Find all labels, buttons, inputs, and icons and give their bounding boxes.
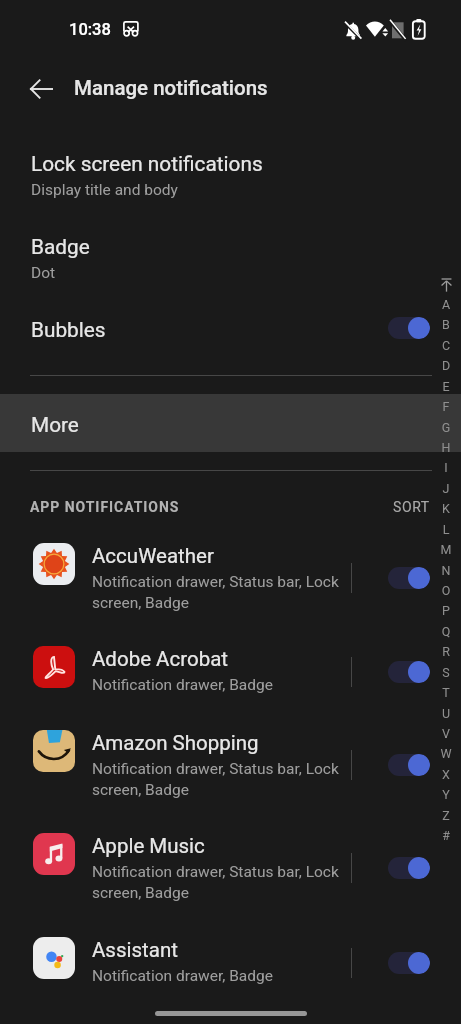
staticText: P — [432, 603, 460, 618]
staticText: D — [432, 358, 460, 373]
button[interactable]: Badge — [0, 233, 461, 316]
staticText: Assistant — [92, 938, 178, 962]
staticText: Badge — [31, 235, 90, 259]
button[interactable]: Assistant — [0, 921, 461, 1005]
staticText: Dot — [31, 264, 56, 282]
staticText: Lock screen notifications — [31, 152, 263, 176]
staticText: # — [432, 828, 460, 843]
staticText: Notification drawer, Badge — [92, 676, 273, 694]
staticText: V — [432, 726, 460, 741]
staticText: 10:38 — [69, 20, 111, 39]
staticText: Bubbles — [31, 318, 106, 342]
staticText: S — [432, 665, 460, 680]
button[interactable]: Assistant notifications toggle, on — [388, 952, 430, 974]
button[interactable]: Apple Music — [0, 817, 461, 920]
staticText: W — [432, 746, 460, 761]
staticText: G — [432, 420, 460, 435]
button[interactable]: Amazon Shopping — [0, 714, 461, 817]
staticText: Notification drawer, Badge — [92, 967, 273, 985]
staticText: L — [432, 522, 460, 537]
staticText: Z — [432, 808, 460, 823]
staticText: Manage notifications — [74, 76, 268, 100]
staticText: Apple Music — [92, 834, 205, 858]
staticText: Notification drawer, Status bar, Lock sc… — [92, 573, 339, 612]
staticText: A — [432, 297, 460, 312]
staticText: C — [432, 338, 460, 353]
staticText: E — [432, 379, 460, 394]
staticText: X — [432, 767, 460, 782]
button[interactable]: SORT — [385, 494, 440, 520]
button[interactable]: Scroll index — [432, 270, 460, 850]
button[interactable]: AccuWeather — [0, 527, 461, 630]
staticText: I — [432, 460, 460, 475]
button[interactable]: Apple Music notifications toggle, on — [388, 857, 430, 879]
staticText: F — [432, 399, 460, 414]
staticText: Notification drawer, Status bar, Lock sc… — [92, 863, 339, 902]
staticText: Q — [432, 624, 460, 639]
button[interactable]: Amazon Shopping notifications toggle, on — [388, 754, 430, 776]
button[interactable]: Bubbles toggle, on — [388, 317, 430, 339]
button[interactable]: Adobe Acrobat notifications toggle, on — [388, 661, 430, 683]
button[interactable]: More — [0, 394, 461, 452]
staticText: SORT — [393, 499, 430, 515]
staticText: Notification drawer, Status bar, Lock sc… — [92, 760, 339, 799]
staticText: M — [432, 542, 460, 557]
staticText: Adobe Acrobat — [92, 647, 229, 671]
staticText: O — [432, 583, 460, 598]
staticText: J — [432, 481, 460, 496]
staticText: K — [432, 501, 460, 516]
button[interactable]: AccuWeather notifications toggle, on — [388, 567, 430, 589]
staticText: U — [432, 706, 460, 721]
button[interactable]: Back — [18, 66, 64, 112]
staticText: APP NOTIFICATIONS — [30, 499, 180, 515]
staticText: H — [432, 440, 460, 455]
staticText: R — [432, 644, 460, 659]
staticText: Y — [432, 787, 460, 802]
staticText: B — [432, 317, 460, 332]
button[interactable]: Bubbles — [0, 300, 461, 368]
staticText: N — [432, 563, 460, 578]
staticText: Display title and body — [31, 181, 178, 199]
staticText: Amazon Shopping — [92, 731, 259, 755]
button[interactable]: Lock screen notifications — [0, 150, 461, 233]
staticText: More — [31, 413, 79, 437]
staticText: AccuWeather — [92, 544, 214, 568]
staticText: T — [432, 685, 460, 700]
button[interactable]: Adobe Acrobat — [0, 630, 461, 714]
